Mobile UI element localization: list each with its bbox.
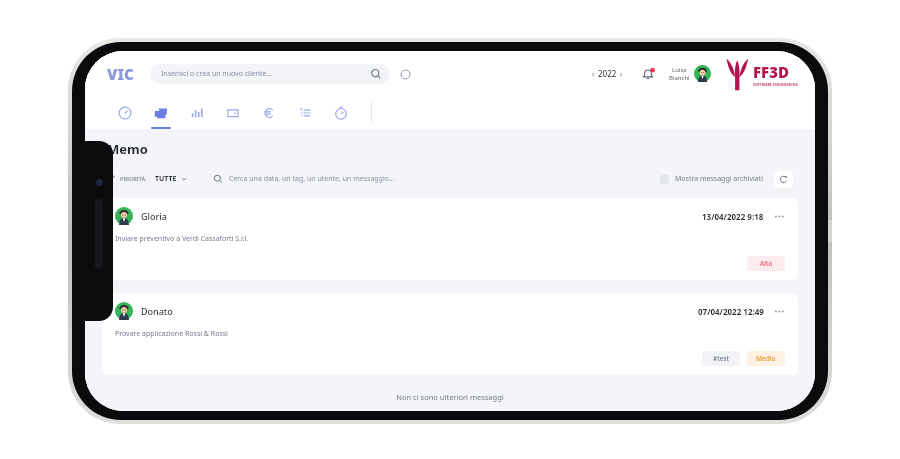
staticText: Donato bbox=[141, 305, 173, 317]
staticText: Bianchi bbox=[669, 74, 690, 82]
staticText: Media bbox=[756, 354, 776, 363]
button[interactable]: Statistiche bbox=[179, 96, 215, 129]
button[interactable]: Elenco bbox=[287, 96, 323, 129]
button[interactable]: Mostra messaggi archiviati bbox=[660, 174, 764, 184]
button[interactable]: TUTTE bbox=[155, 174, 187, 184]
staticText: Inviare preventivo a Verdi Cassaforti S.… bbox=[115, 234, 249, 244]
staticText: Non ci sono ulteriori messaggi bbox=[85, 392, 815, 402]
staticText: 13/04/2022 9:18 bbox=[702, 211, 764, 222]
staticText: ‹ bbox=[592, 68, 595, 79]
button[interactable]: ‹ bbox=[588, 64, 627, 83]
staticText: SOFTWARE ENGINEERING bbox=[753, 82, 799, 87]
staticText: TUTTE bbox=[155, 174, 177, 184]
button[interactable]: Aggiorna bbox=[774, 171, 793, 188]
button[interactable]: Notifiche bbox=[639, 65, 657, 83]
button[interactable]: Pagamenti bbox=[251, 96, 287, 129]
button[interactable]: Inserisci o crea un nuovo cliente... bbox=[150, 64, 390, 84]
staticText: › bbox=[620, 68, 623, 79]
staticText: 2022 bbox=[598, 68, 617, 79]
button[interactable]: Altre opzioni bbox=[773, 210, 785, 222]
staticText: Provare applicazione Rossi & Rossi bbox=[115, 329, 228, 339]
staticText: Inserisci o crea un nuovo cliente... bbox=[161, 69, 273, 79]
button[interactable]: Media bbox=[747, 351, 785, 366]
button[interactable]: Luisa bbox=[669, 65, 711, 82]
staticText: FF3D bbox=[753, 62, 789, 82]
staticText: Alta bbox=[760, 259, 773, 268]
staticText: VIC bbox=[107, 64, 134, 84]
staticText: Mostra messaggi archiviati bbox=[675, 174, 764, 184]
button[interactable]: Memo bbox=[143, 96, 179, 129]
button[interactable]: Tempi bbox=[323, 96, 359, 129]
button[interactable]: Altre opzioni bbox=[773, 305, 785, 317]
button[interactable]: Impostazioni bbox=[398, 67, 412, 81]
button[interactable]: Portafoglio bbox=[215, 96, 251, 129]
staticText: Gloria bbox=[141, 210, 167, 222]
button[interactable]: Dashboard bbox=[107, 96, 143, 129]
button[interactable]: Alta bbox=[747, 256, 785, 271]
staticText: #test bbox=[713, 354, 730, 363]
staticText: PRIORITÀ: bbox=[120, 175, 147, 183]
button[interactable]: Gloria bbox=[102, 198, 798, 280]
button[interactable]: #test bbox=[702, 351, 740, 366]
staticText: Memo bbox=[107, 140, 148, 158]
button[interactable]: Cerca una data, un tag, un utente, un me… bbox=[229, 174, 395, 184]
button[interactable]: Donato bbox=[102, 293, 798, 375]
staticText: 07/04/2022 12:49 bbox=[698, 306, 764, 317]
staticText: Luisa bbox=[672, 66, 687, 74]
